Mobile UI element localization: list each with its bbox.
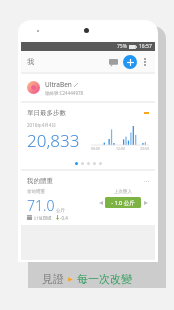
button[interactable]: More options [140,57,150,67]
staticText: 71.0 [27,196,55,215]
button[interactable]: 我的體重 [21,171,155,225]
button[interactable]: Messages [107,56,119,68]
staticText: 20,833 [27,129,80,152]
staticText: 我 [27,57,34,66]
staticText: 單日最多步數 [27,109,66,117]
button[interactable]: Add [123,55,137,69]
button[interactable]: UltraBen [21,74,155,101]
staticText: 見證 [42,272,64,286]
staticText: 聯絡號:C24444978 [45,90,84,96]
button[interactable]: 單日最多步數 [21,103,155,169]
staticText: 計算BMI [34,215,52,220]
staticText: UltraBen [45,80,72,89]
staticText: 12:00 [116,146,125,151]
staticText: 我的體重 [27,177,53,185]
staticText: 當前體重 [27,189,45,195]
staticText: 每一次改變 [77,272,132,286]
button[interactable]: 我 [26,56,35,67]
staticText: 00:00 [91,146,100,151]
staticText: 16:57 [139,43,152,50]
staticText: 公斤 [56,208,65,214]
staticText: -0.4 [60,215,68,220]
button[interactable]: Next [142,199,149,206]
staticText: 23:59 [140,146,149,151]
button[interactable]: - 1.0 公斤 [105,197,141,208]
button[interactable]: Previous [97,199,104,206]
staticText: 75% [117,43,127,50]
staticText: 上次匯入 [114,189,132,195]
staticText: 2016年4月4日 [27,122,56,128]
staticText: - 1.0 公斤 [111,199,135,207]
